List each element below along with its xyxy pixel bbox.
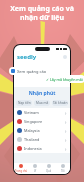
staticText: › [65,146,67,152]
staticText: Nhận phút [14,90,70,97]
staticText: Quà [46,169,52,173]
staticText: › [65,119,67,125]
staticText: Tài khoản [53,101,68,105]
button[interactable]: Nạp tiền [16,100,32,106]
staticText: Nạp tiền [18,101,31,105]
button[interactable]: Vietnam [14,108,70,117]
staticText: Singapore [24,119,43,124]
button[interactable]: Mua mã [34,100,50,106]
button[interactable]: Indonesia [14,144,70,153]
button[interactable]: Quà [42,163,56,174]
button[interactable]: Tài khoản [52,100,68,106]
staticText: seedly [17,53,37,61]
staticText: › [65,110,67,116]
staticText: Trang chủ [15,169,28,173]
button[interactable]: Malaysia [14,126,70,135]
staticText: Vietnam [24,110,39,115]
button[interactable]: Settings [63,55,67,59]
button[interactable]: Tôi [56,163,70,174]
button[interactable]: Singapore [14,117,70,126]
staticText: Thailand [24,137,40,142]
staticText: › [65,137,67,143]
button[interactable]: ✓ Lấy mã khuyến mãi [44,75,84,83]
button[interactable]: Ví [28,163,42,174]
button[interactable]: Trang chủ [14,163,28,174]
staticText: Indonesia [24,146,42,151]
staticText: Ví [34,169,37,173]
button[interactable]: Xem quảng cáo [9,67,49,75]
staticText: Mua mã [36,101,49,105]
button[interactable]: Thailand [14,135,70,144]
staticText: ✓ Lấy mã khuyến mãi [46,77,83,82]
staticText: Xem quảng cáo và nhận dữ liệu [0,4,84,22]
staticText: Malaysia [24,128,40,133]
staticText: Xem quảng cáo [17,69,47,74]
staticText: Tôi [61,169,65,173]
staticText: › [65,128,67,134]
